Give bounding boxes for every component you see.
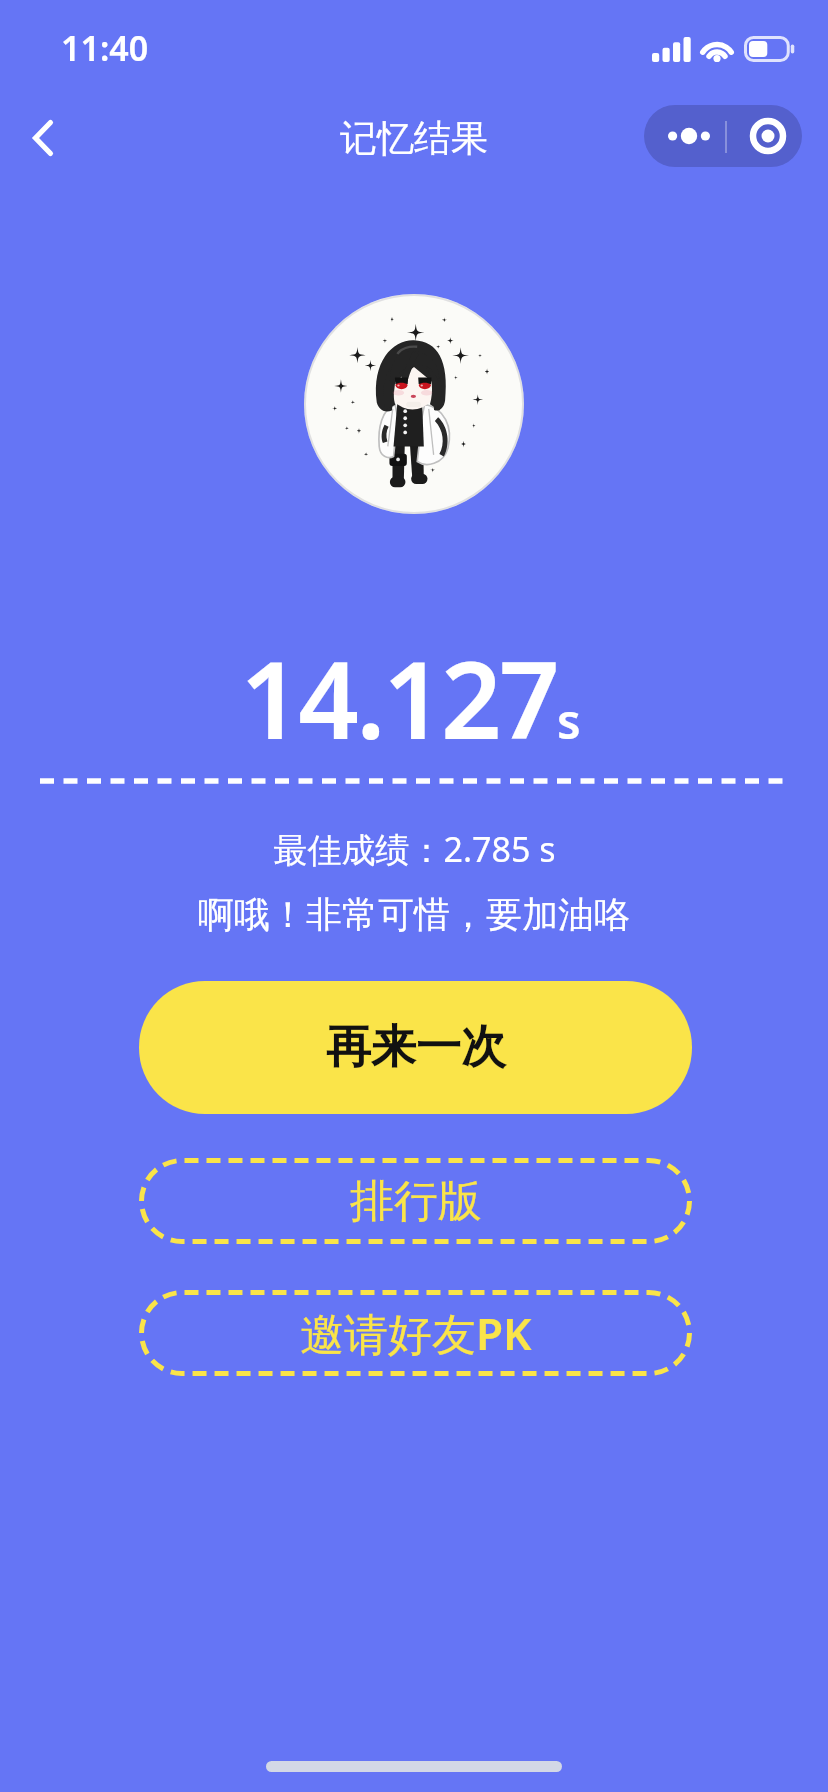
button[interactable]: Close mini program — [734, 105, 802, 167]
staticText: 记忆结果 — [340, 115, 488, 162]
staticText: 最佳成绩：2.785 s — [273, 826, 556, 872]
button[interactable]: Back — [0, 88, 86, 188]
staticText: 邀请好友PK — [300, 1303, 532, 1363]
staticText: 再来一次 — [326, 1019, 506, 1076]
button[interactable]: 邀请好友PK — [139, 1290, 692, 1376]
staticText: 14.127s — [240, 626, 581, 756]
button[interactable]: More — [644, 105, 734, 167]
staticText: 啊哦！非常可惜，要加油咯 — [198, 892, 630, 937]
button[interactable]: 排行版 — [139, 1158, 692, 1244]
button[interactable]: 再来一次 — [139, 981, 692, 1114]
button[interactable]: Avatar — [304, 294, 524, 514]
staticText: 排行版 — [350, 1174, 482, 1229]
staticText: 11:40 — [61, 25, 149, 71]
